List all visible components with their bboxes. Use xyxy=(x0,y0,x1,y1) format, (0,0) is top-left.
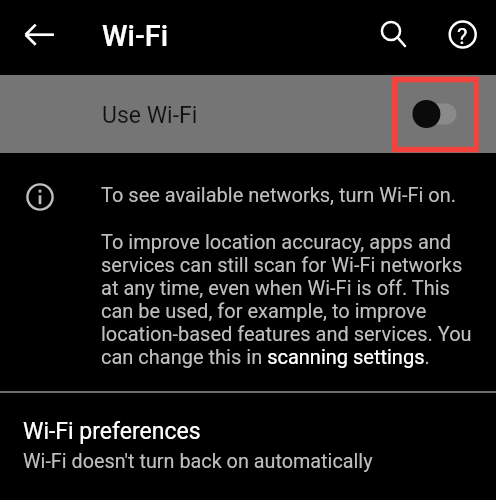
staticText: Wi-Fi preferences xyxy=(23,418,201,445)
staticText: To see available networks, turn Wi-Fi on… xyxy=(101,183,457,206)
button[interactable]: Use Wi-Fi xyxy=(0,75,496,153)
button[interactable]: Wi-Fi preferences xyxy=(0,393,496,500)
staticText: Use Wi-Fi xyxy=(102,102,198,129)
button[interactable]: Help xyxy=(440,12,486,58)
staticText: Wi-Fi doesn't turn back on automatically xyxy=(23,450,373,473)
button[interactable]: Search xyxy=(369,9,415,55)
staticText: ? xyxy=(457,24,468,50)
staticText: To improve location accuracy, apps and s… xyxy=(101,230,479,368)
button[interactable]: Back xyxy=(4,13,50,59)
staticText: Wi-Fi xyxy=(102,19,169,53)
